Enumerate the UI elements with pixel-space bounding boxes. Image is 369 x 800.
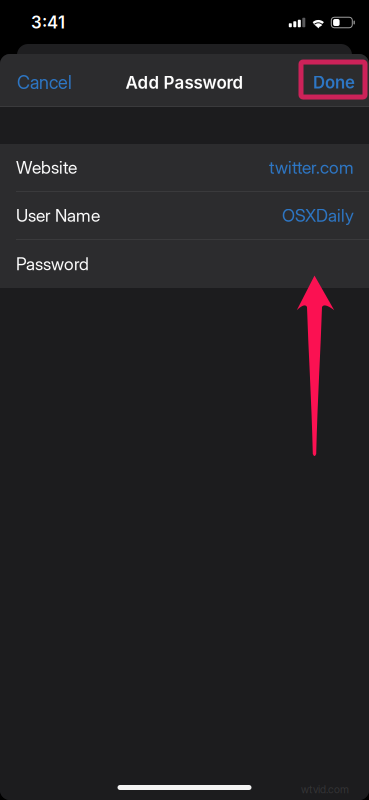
staticText: 3:41 <box>31 12 65 33</box>
staticText: Add Password <box>125 72 243 93</box>
button[interactable]: Password <box>0 240 369 288</box>
button[interactable]: User Name <box>0 192 369 240</box>
staticText: wtvid.com <box>301 783 349 796</box>
staticText: Website <box>16 157 77 178</box>
staticText: User Name <box>16 205 100 226</box>
staticText: Done <box>313 72 355 93</box>
staticText: Cancel <box>17 72 72 93</box>
button[interactable]: Done <box>301 54 369 106</box>
staticText: twitter.com <box>269 157 354 178</box>
button[interactable]: Website <box>0 144 369 192</box>
staticText: Password <box>16 253 89 274</box>
button[interactable]: Cancel <box>0 54 84 106</box>
staticText: OSXDaily <box>282 205 354 226</box>
